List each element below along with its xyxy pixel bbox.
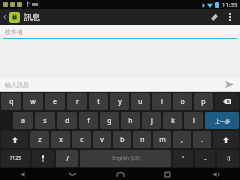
staticText: o xyxy=(180,97,185,107)
button[interactable]: Key xyxy=(215,93,239,110)
button[interactable]: u xyxy=(131,93,150,110)
staticText: 輸入訊息 xyxy=(5,81,29,89)
button[interactable]: z xyxy=(30,131,49,148)
staticText: m xyxy=(159,135,166,145)
button[interactable]: , xyxy=(173,131,191,148)
button[interactable]: Volume down xyxy=(0,168,48,180)
button[interactable]: :) xyxy=(217,150,239,167)
button[interactable]: b xyxy=(113,131,131,148)
staticText: e xyxy=(53,97,57,107)
staticText: p xyxy=(201,97,206,107)
button[interactable]: / xyxy=(56,150,78,167)
button[interactable]: Attach xyxy=(205,9,223,25)
staticText: u xyxy=(138,97,143,107)
button[interactable]: e xyxy=(45,93,65,110)
staticText: s xyxy=(43,116,47,126)
staticText: 11:35 xyxy=(222,1,238,9)
button[interactable]: l xyxy=(184,112,203,129)
button[interactable]: h xyxy=(121,112,140,129)
staticText: a xyxy=(21,116,25,126)
button[interactable]: s xyxy=(35,112,55,129)
button[interactable]: - xyxy=(195,150,215,167)
button[interactable]: k xyxy=(163,112,182,129)
button[interactable]: p xyxy=(194,93,213,110)
button[interactable]: c xyxy=(72,131,91,148)
button[interactable]: j xyxy=(142,112,161,129)
staticText: n xyxy=(140,135,145,145)
staticText: z xyxy=(38,135,42,145)
staticText: j xyxy=(151,116,153,126)
button[interactable]: o xyxy=(173,93,192,110)
staticText: ?123 xyxy=(10,155,21,162)
staticText: w xyxy=(30,97,36,107)
button[interactable]: t xyxy=(89,93,108,110)
staticText: . xyxy=(201,135,203,145)
button[interactable]: a xyxy=(13,112,33,129)
staticText: 收件者 xyxy=(5,28,23,36)
button[interactable]: g xyxy=(100,112,119,129)
button[interactable]: Home xyxy=(96,168,144,180)
button[interactable]: 輸入訊息 xyxy=(0,78,218,91)
button[interactable]: d xyxy=(57,112,77,129)
staticText: , xyxy=(181,135,183,145)
button[interactable]: English (US) xyxy=(80,150,171,167)
staticText: :) xyxy=(227,155,230,162)
staticText: 訊息 xyxy=(24,12,40,22)
button[interactable]: 收件者 xyxy=(0,25,240,39)
staticText: y xyxy=(118,97,122,107)
button[interactable]: Back xyxy=(48,168,96,180)
button[interactable]: w xyxy=(23,93,43,110)
button[interactable]: n xyxy=(133,131,151,148)
staticText: h xyxy=(128,116,133,126)
button[interactable]: ?123 xyxy=(1,150,30,167)
button[interactable]: Key xyxy=(32,150,54,167)
button[interactable]: Recent apps xyxy=(144,168,192,180)
staticText: c xyxy=(80,135,84,145)
button[interactable]: Key xyxy=(1,131,28,148)
staticText: b xyxy=(120,135,125,145)
staticText: 上一步 xyxy=(215,118,230,124)
staticText: g xyxy=(107,116,112,126)
button[interactable]: 上一步 xyxy=(205,112,239,129)
button[interactable]: m xyxy=(153,131,171,148)
staticText: f xyxy=(87,116,90,126)
button[interactable]: More options xyxy=(223,9,237,25)
staticText: x xyxy=(59,135,63,145)
staticText: i xyxy=(161,97,163,107)
button[interactable]: i xyxy=(152,93,171,110)
button[interactable]: q xyxy=(1,93,21,110)
staticText: l xyxy=(193,116,195,126)
button[interactable]: ' xyxy=(173,150,193,167)
staticText: / xyxy=(66,154,69,164)
button[interactable]: v xyxy=(93,131,111,148)
staticText: q xyxy=(9,97,14,107)
button[interactable]: Volume up xyxy=(192,168,240,180)
staticText: v xyxy=(100,135,104,145)
button[interactable]: . xyxy=(193,131,211,148)
staticText: English (US) xyxy=(112,155,140,162)
staticText: k xyxy=(171,116,175,126)
button[interactable]: f xyxy=(79,112,98,129)
staticText: d xyxy=(65,116,70,126)
button[interactable]: y xyxy=(110,93,129,110)
button[interactable]: x xyxy=(51,131,70,148)
button[interactable]: Key xyxy=(213,131,239,148)
staticText: - xyxy=(204,154,207,164)
staticText: t xyxy=(97,97,100,107)
button[interactable]: r xyxy=(67,93,87,110)
staticText: ' xyxy=(182,154,184,164)
button[interactable]: Send xyxy=(218,78,240,91)
staticText: r xyxy=(76,97,79,107)
